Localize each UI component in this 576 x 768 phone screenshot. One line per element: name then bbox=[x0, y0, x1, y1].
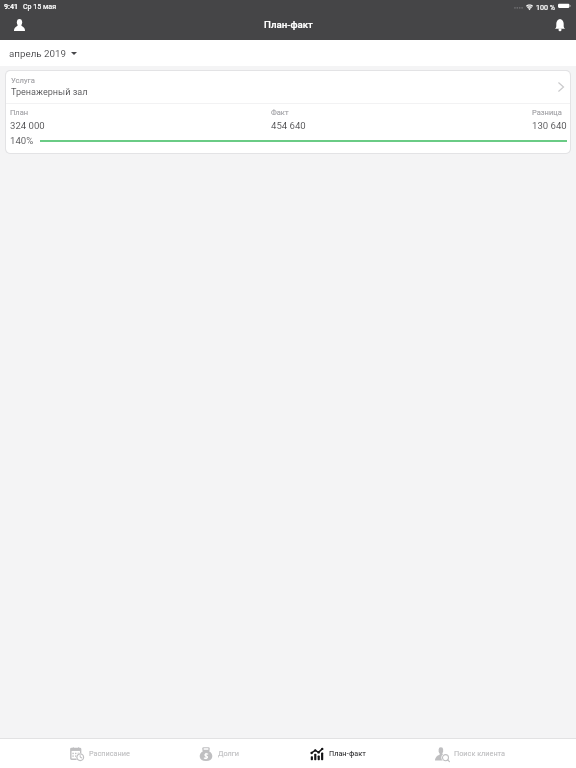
staticText: Расписание bbox=[89, 749, 130, 758]
staticText: Разница bbox=[532, 108, 562, 117]
staticText: 324 000 bbox=[10, 120, 45, 131]
button[interactable]: Уведомления bbox=[543, 12, 576, 37]
button[interactable]: Услуга bbox=[6, 71, 570, 153]
staticText: Факт bbox=[271, 108, 289, 117]
staticText: 9:41 bbox=[4, 2, 18, 10]
staticText: План-факт bbox=[264, 19, 313, 30]
button[interactable]: Долги bbox=[199, 739, 240, 768]
button[interactable]: План-факт bbox=[310, 739, 366, 768]
staticText: Ср 15 мая bbox=[23, 2, 57, 10]
staticText: План bbox=[10, 108, 29, 117]
button[interactable]: Поиск клиента bbox=[435, 739, 506, 768]
staticText: 140% bbox=[10, 135, 34, 146]
staticText: 100 % bbox=[536, 3, 555, 11]
staticText: 130 640 bbox=[532, 120, 567, 131]
button[interactable]: Расписание bbox=[70, 739, 130, 768]
staticText: План-факт bbox=[329, 749, 366, 758]
staticText: Поиск клиента bbox=[454, 749, 506, 758]
staticText: Долги bbox=[218, 749, 240, 758]
staticText: апрель 2019 bbox=[9, 48, 67, 59]
staticText: Услуга bbox=[11, 76, 35, 85]
button[interactable]: Профиль bbox=[0, 12, 36, 37]
staticText: 454 640 bbox=[271, 120, 306, 131]
staticText: Тренажерный зал bbox=[11, 87, 88, 98]
button[interactable]: апрель 2019 bbox=[0, 44, 86, 63]
